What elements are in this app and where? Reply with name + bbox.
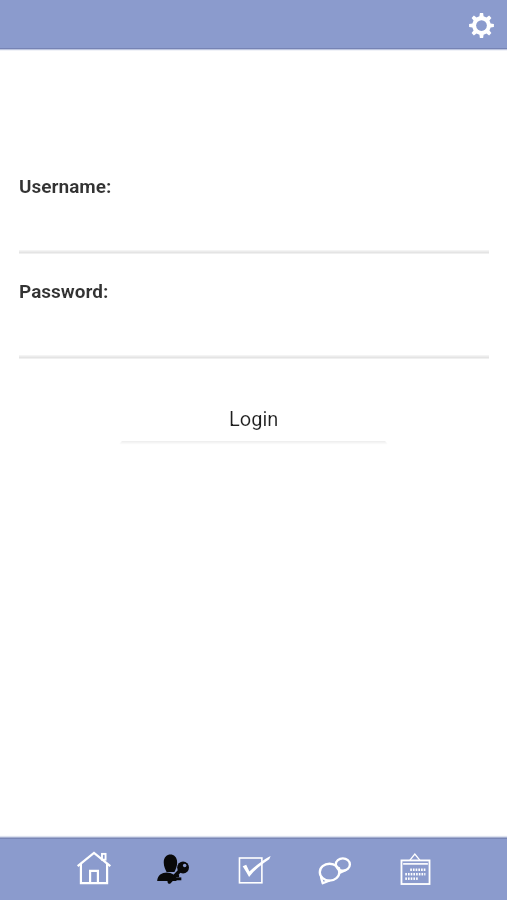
staticText: Username: <box>19 175 112 197</box>
button[interactable]: Login <box>120 400 387 441</box>
button[interactable]: Tasks <box>215 839 295 900</box>
button[interactable]: Settings <box>461 4 501 44</box>
button[interactable]: Home <box>53 839 134 900</box>
button[interactable]: Notices <box>375 839 455 900</box>
button[interactable]: Account <box>134 839 215 900</box>
staticText: Password: <box>19 280 109 302</box>
button[interactable]: Chat <box>295 839 375 900</box>
staticText: Login <box>229 407 279 430</box>
